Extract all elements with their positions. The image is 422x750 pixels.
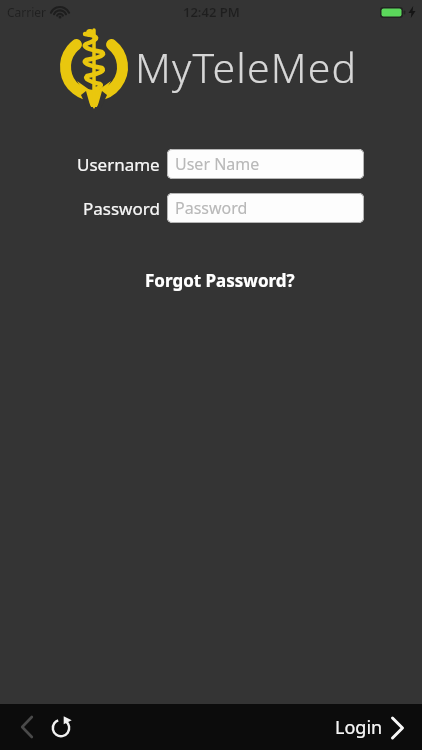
staticText: Login bbox=[335, 715, 383, 740]
button[interactable] bbox=[50, 716, 72, 738]
staticText: MyTeleMed bbox=[135, 39, 358, 95]
staticText: Username bbox=[77, 153, 160, 176]
button[interactable]: Forgot Password? bbox=[145, 269, 295, 292]
button[interactable]: Password bbox=[167, 193, 364, 223]
staticText: 12:42 PM bbox=[183, 3, 240, 21]
staticText: Password bbox=[83, 197, 160, 220]
button[interactable]: User Name bbox=[167, 149, 364, 179]
staticText: User Name bbox=[175, 153, 260, 175]
button[interactable]: Login bbox=[335, 715, 404, 740]
staticText: Carrier bbox=[7, 4, 47, 20]
button[interactable] bbox=[16, 716, 38, 738]
staticText: Password bbox=[175, 197, 248, 219]
